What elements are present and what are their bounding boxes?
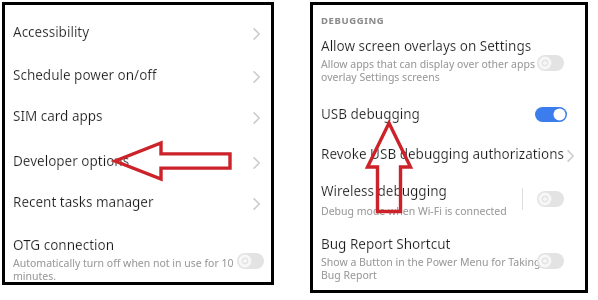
other: Arrow pointing to USB debugging (365, 121, 413, 214)
button[interactable]: Open (246, 67, 266, 87)
button[interactable] (313, 97, 585, 133)
staticText: Schedule power on/off (13, 66, 157, 84)
staticText: Developer options (13, 152, 130, 170)
button[interactable] (5, 143, 271, 183)
staticText: Accessibility (13, 23, 90, 41)
staticText: Show a Button in the Power Menu for Taki… (321, 255, 550, 269)
button[interactable]: Allow screen overlays toggle (537, 55, 564, 71)
button[interactable]: Open (560, 146, 580, 166)
button[interactable]: USB debugging toggle (535, 107, 567, 122)
button[interactable] (5, 57, 271, 97)
button[interactable] (313, 179, 585, 221)
button[interactable] (5, 229, 271, 282)
staticText: USB debugging (321, 105, 420, 123)
button[interactable] (5, 184, 271, 224)
button[interactable] (313, 33, 585, 81)
button[interactable] (5, 98, 271, 138)
staticText: Revoke USB debugging authorizations (321, 145, 565, 163)
button[interactable]: Open (246, 153, 266, 173)
staticText: Wireless debugging (321, 182, 447, 200)
button[interactable] (5, 14, 271, 54)
button[interactable] (313, 231, 585, 283)
staticText: Automatically turn off when not in use f… (13, 256, 234, 270)
button[interactable]: Wireless debugging toggle (537, 191, 564, 207)
button[interactable]: Open (246, 108, 266, 128)
staticText: Bug Report (321, 268, 377, 282)
button[interactable] (313, 139, 585, 174)
staticText: Debug mode when Wi-Fi is connected (321, 204, 507, 218)
button[interactable]: Open (246, 194, 266, 214)
staticText: DEBUGGING (321, 14, 385, 27)
staticText: OTG connection (13, 236, 115, 254)
staticText: minutes. (13, 269, 57, 283)
staticText: Allow apps that can display over other a… (321, 57, 548, 71)
staticText: SIM card apps (13, 107, 103, 125)
staticText: overlay Settings screens (321, 70, 440, 84)
staticText: Recent tasks manager (13, 193, 154, 211)
other: Arrow pointing to Developer options (113, 140, 233, 182)
staticText: Bug Report Shortcut (321, 235, 451, 253)
staticText: Allow screen overlays on Settings (321, 37, 532, 55)
button[interactable]: Bug Report Shortcut toggle (537, 253, 564, 269)
button[interactable]: OTG connection toggle (237, 253, 264, 269)
button[interactable]: Open (246, 24, 266, 44)
